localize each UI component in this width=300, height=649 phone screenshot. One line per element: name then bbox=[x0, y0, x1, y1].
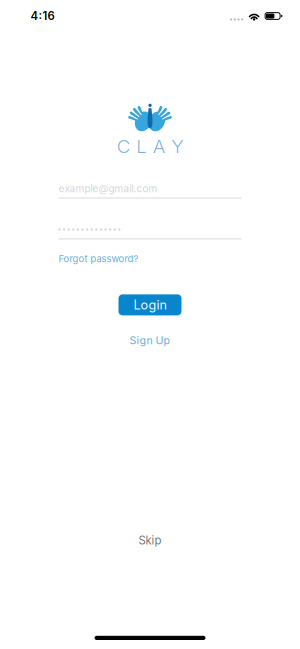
staticText: Forgot password? bbox=[58, 253, 138, 264]
staticText: Login bbox=[133, 297, 166, 312]
staticText: L bbox=[136, 135, 147, 158]
button[interactable]: Login bbox=[118, 294, 181, 315]
button[interactable]: Sign Up bbox=[129, 333, 170, 347]
button[interactable]: Skip bbox=[138, 534, 161, 547]
staticText: Y bbox=[171, 135, 183, 158]
staticText: 4:16 bbox=[30, 9, 54, 23]
staticText: C bbox=[117, 135, 131, 158]
button[interactable]: Forgot password? bbox=[58, 252, 138, 265]
staticText: example@gmail.com bbox=[58, 182, 157, 195]
staticText: Sign Up bbox=[129, 334, 170, 347]
staticText: A bbox=[153, 135, 166, 158]
staticText: Skip bbox=[138, 533, 161, 547]
